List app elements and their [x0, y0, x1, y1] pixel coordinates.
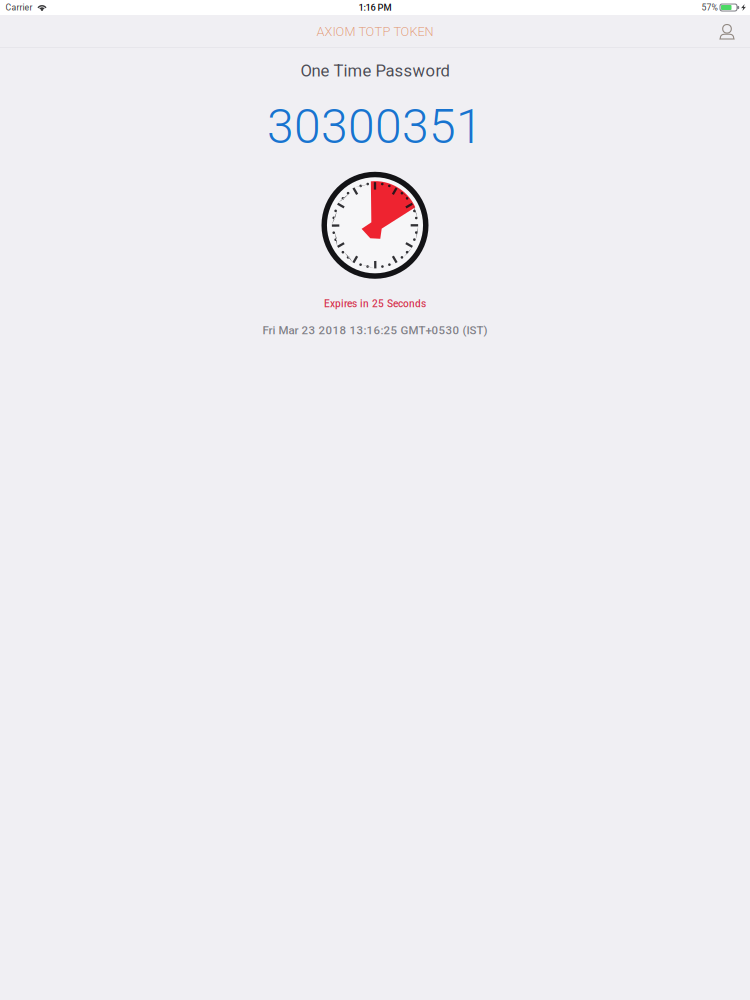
staticText: One Time Password: [300, 61, 449, 80]
staticText: 1:16 PM: [358, 2, 391, 13]
staticText: 57%: [701, 2, 717, 13]
staticText: Fri Mar 23 2018 13:16:25 GMT+0530 (IST): [262, 324, 487, 337]
button[interactable]: Account: [708, 16, 750, 47]
staticText: AXIOM TOTP TOKEN: [316, 24, 433, 39]
staticText: Expires in 25 Seconds: [324, 298, 426, 310]
staticText: Carrier: [5, 2, 32, 13]
staticText: 30300351: [267, 98, 483, 155]
